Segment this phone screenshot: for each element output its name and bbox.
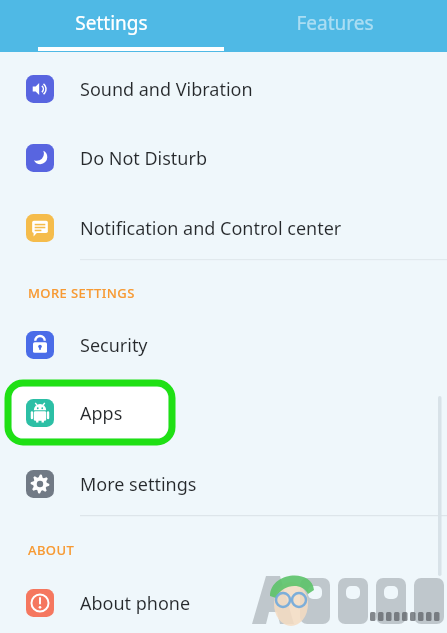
button[interactable]: Apps — [0, 389, 447, 437]
staticText: MORE SETTINGS — [28, 284, 135, 302]
staticText: More settings — [80, 472, 197, 497]
staticText: ABOUT — [28, 541, 75, 559]
staticText: Do Not Disturb — [80, 146, 207, 171]
button[interactable]: Features — [223, 0, 447, 52]
staticText: Settings — [75, 10, 148, 36]
button[interactable]: Settings — [0, 0, 223, 52]
button[interactable]: Do Not Disturb — [0, 134, 447, 182]
staticText: Sound and Vibration — [80, 77, 253, 102]
button[interactable]: More settings — [0, 460, 447, 508]
button[interactable]: Security — [0, 321, 447, 369]
staticText: About phone — [80, 591, 191, 616]
staticText: Apps — [80, 401, 123, 426]
button[interactable]: About phone — [0, 579, 447, 627]
button[interactable]: Notification and Control center — [0, 204, 447, 252]
button[interactable]: Sound and Vibration — [0, 65, 447, 113]
staticText: Features — [296, 10, 374, 36]
staticText: Security — [80, 333, 148, 358]
staticText: Notification and Control center — [80, 216, 342, 241]
